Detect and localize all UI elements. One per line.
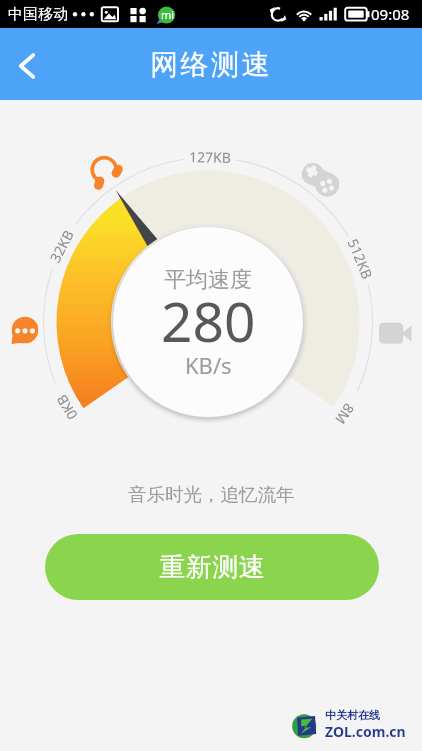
- staticText: 重新测速: [159, 551, 265, 584]
- staticText: 中国移动: [8, 5, 68, 24]
- staticText: KB/s: [185, 350, 232, 380]
- staticText: ZOL.com.cn: [325, 722, 406, 741]
- staticText: mi: [161, 7, 175, 22]
- staticText: 平均速度: [164, 266, 252, 294]
- staticText: 280: [161, 283, 256, 358]
- button[interactable]: 重新测速: [45, 534, 379, 600]
- staticText: 09:08: [371, 4, 410, 24]
- button[interactable]: Back: [0, 39, 54, 93]
- staticText: 中关村在线: [325, 708, 380, 722]
- staticText: 网络测速: [150, 47, 273, 82]
- staticText: 音乐时光，追忆流年: [128, 483, 295, 506]
